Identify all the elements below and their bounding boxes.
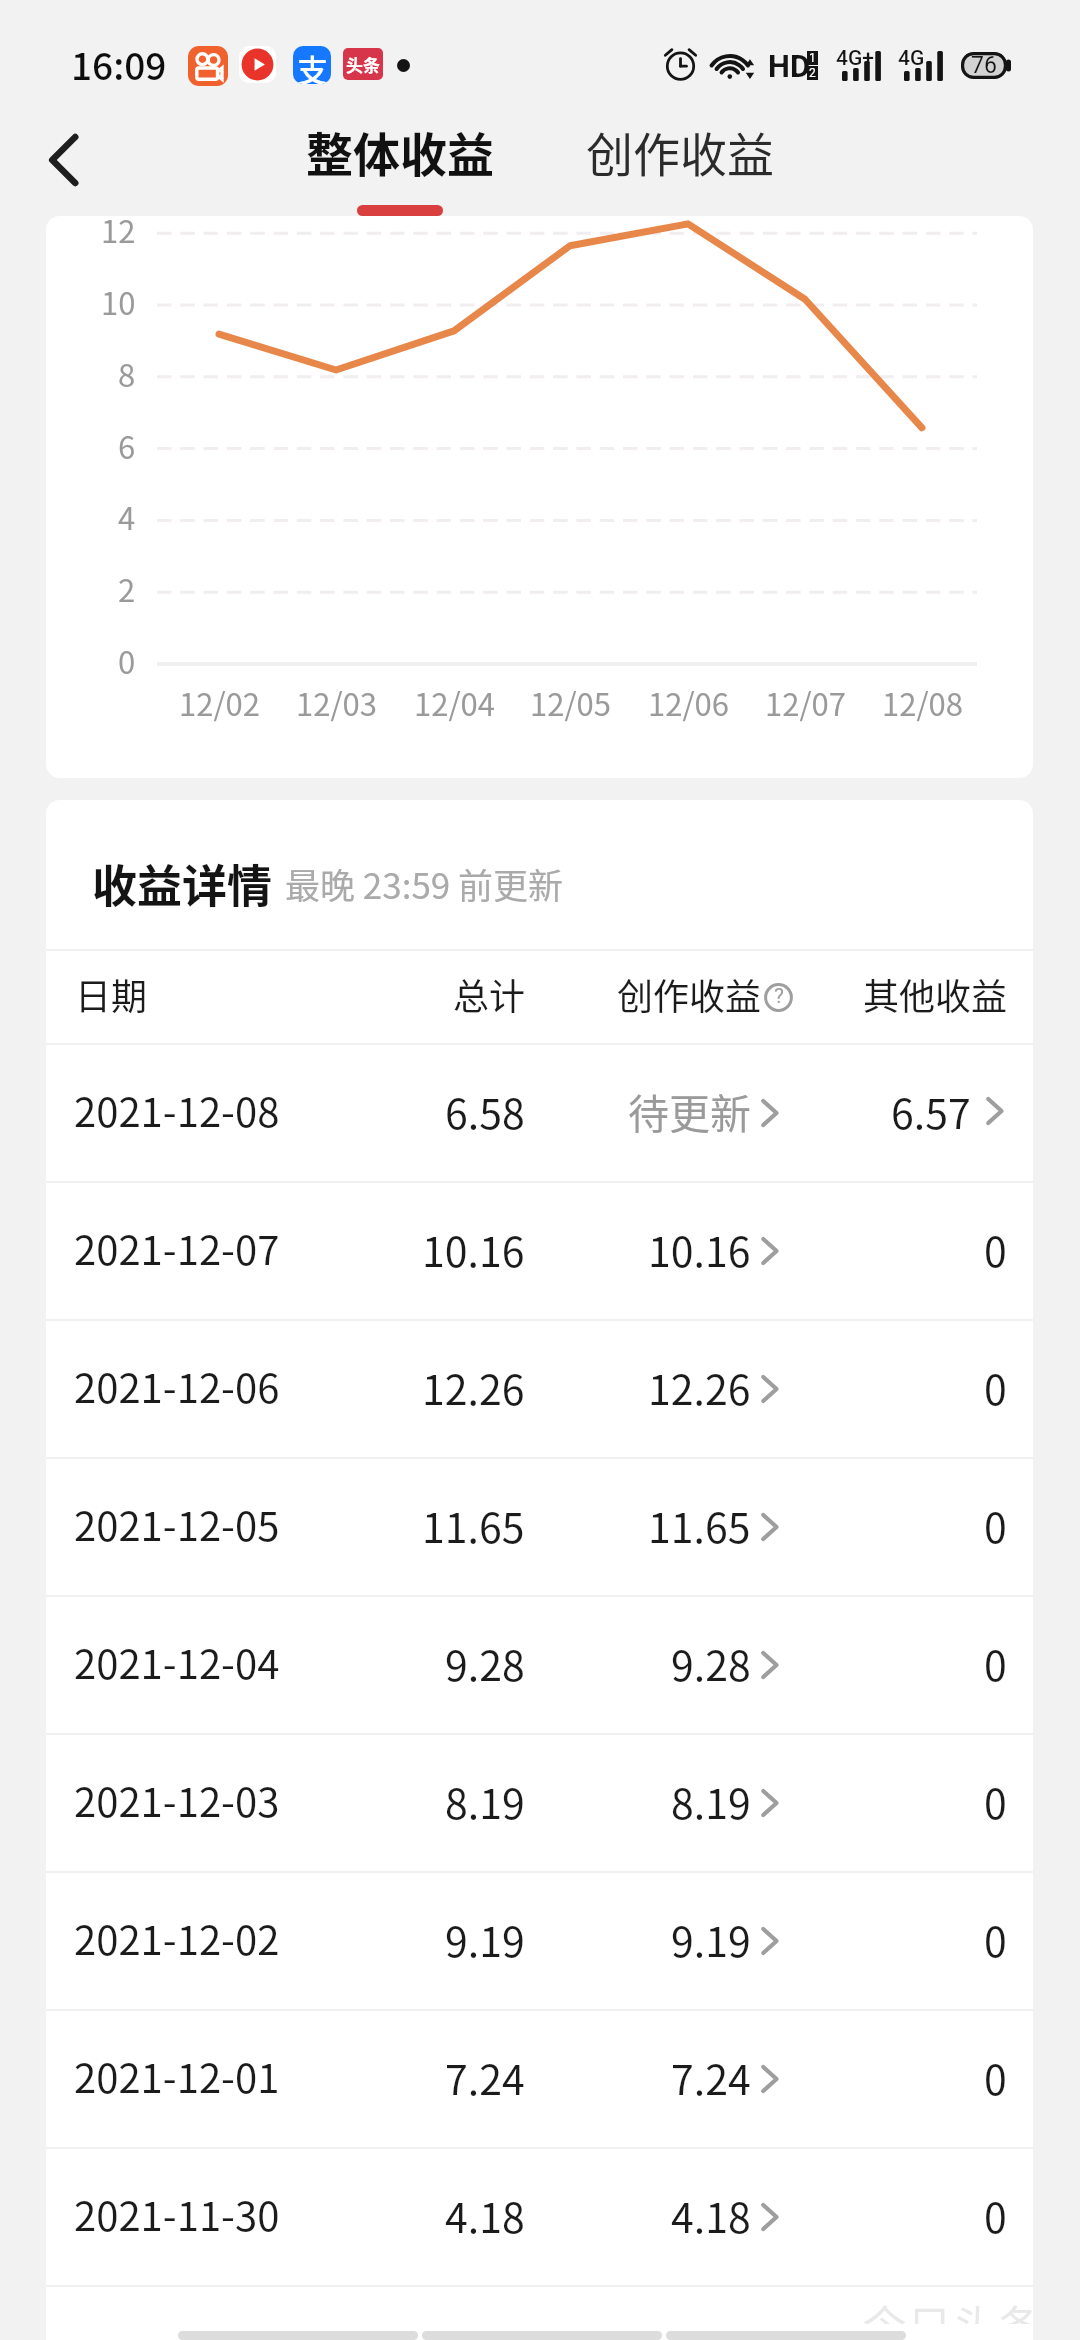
staticText: 9.19 [671,1909,751,1968]
staticText: 0 [984,1219,1007,1278]
staticText: 9.19 [445,1909,525,1968]
staticText: 10.16 [648,1219,751,1278]
staticText: 0 [984,2047,1007,2106]
staticText: 总计 [453,968,526,1020]
staticText: 10 [101,279,136,321]
staticText: 7.24 [445,2047,525,2106]
staticText: 4.18 [445,2185,525,2244]
staticText: 1 [809,51,816,65]
staticText: 9.28 [671,1633,751,1692]
button[interactable]: Creation earnings detail [590,1045,785,1181]
staticText: 2021-12-04 [74,1633,280,1691]
staticText: 待更新 [628,1081,751,1140]
staticText: 0 [984,1495,1007,1554]
button[interactable]: 2021-12-02 [46,1873,1033,2009]
staticText: 10.16 [422,1219,525,1278]
staticText: 2 [118,566,136,608]
staticText: 创作收益 [586,117,774,185]
staticText: 12.26 [648,1357,751,1416]
button[interactable]: 2021-12-01 [46,2011,1033,2147]
staticText: 2021-12-07 [74,1219,280,1277]
button[interactable]: 创作收益 [570,95,790,207]
button[interactable]: Creation earnings detail [590,2149,785,2285]
staticText: 4G [898,46,925,71]
button[interactable]: Creation earnings detail [590,1597,785,1733]
staticText: 4 [118,494,136,536]
button[interactable]: 2021-12-08 [46,1045,1033,1181]
staticText: 16:09 [71,37,167,91]
button[interactable]: 2021-11-30 [46,2149,1033,2285]
staticText: 2021-12-06 [74,1357,280,1415]
staticText: 0 [984,1633,1007,1692]
staticText: 0 [984,2185,1007,2244]
button[interactable]: Creation earnings detail [590,1321,785,1457]
staticText: 2021-11-30 [74,2185,280,2243]
button[interactable]: 2021-12-06 [46,1321,1033,1457]
staticText: 今日头条 [862,2292,1043,2324]
staticText: ? [774,984,784,1009]
button[interactable]: Creation earnings detail [590,1873,785,2009]
staticText: 12/02 [179,680,260,722]
staticText: 11.65 [422,1495,525,1554]
button[interactable]: 2021-12-03 [46,1735,1033,1871]
button[interactable]: Creation earnings detail [590,1183,785,1319]
staticText: 2021-12-05 [74,1495,280,1553]
staticText: 12.26 [422,1357,525,1416]
button[interactable]: 2021-12-04 [46,1597,1033,1733]
staticText: 12/03 [296,680,377,722]
staticText: 4.18 [671,2185,751,2244]
staticText: 0 [984,1771,1007,1830]
button[interactable]: Help about creation earnings [764,983,793,1012]
button[interactable]: Back [10,104,120,216]
button[interactable]: Creation earnings detail [590,1735,785,1871]
button[interactable]: Creation earnings detail [590,2011,785,2147]
staticText: 其他收益 [863,968,1008,1020]
staticText: 4G+ [836,46,874,71]
staticText: 收益详情 [92,851,273,916]
staticText: 12 [101,216,136,249]
staticText: 9.28 [445,1633,525,1692]
button[interactable]: 整体收益 [290,95,510,207]
button[interactable]: Creation earnings detail [590,1459,785,1595]
staticText: 12/04 [414,680,495,722]
staticText: HD [768,48,811,84]
staticText: 6 [118,423,136,465]
staticText: 整体收益 [306,117,494,185]
staticText: 8.19 [671,1771,751,1830]
staticText: 12/05 [530,680,611,722]
staticText: 最晚 23:59 前更新 [285,858,564,909]
staticText: 头条 [346,52,380,77]
staticText: 2 [809,66,816,80]
staticText: 8.19 [445,1771,525,1830]
staticText: 6.58 [445,1081,525,1140]
staticText: 0 [984,1909,1007,1968]
staticText: 2021-12-01 [74,2047,280,2105]
staticText: 创作收益 [617,968,762,1020]
staticText: 8 [118,351,136,393]
staticText: 11.65 [648,1495,751,1554]
staticText: 0 [118,638,136,680]
staticText: 12/08 [882,680,963,722]
staticText: 6.57 [891,1081,971,1140]
staticText: 2021-12-02 [74,1909,280,1967]
staticText: 7.24 [671,2047,751,2106]
staticText: 12/07 [765,680,846,722]
staticText: 0 [984,1357,1007,1416]
button[interactable]: Other earnings detail [853,1045,1033,1181]
staticText: 日期 [75,968,148,1020]
staticText: 12/06 [648,680,729,722]
staticText: 支 [297,46,328,84]
staticText: 76 [971,52,997,79]
staticText: 2021-12-03 [74,1771,280,1829]
button[interactable]: 2021-12-05 [46,1459,1033,1595]
button[interactable]: 2021-12-07 [46,1183,1033,1319]
staticText: 2021-12-08 [74,1081,280,1139]
